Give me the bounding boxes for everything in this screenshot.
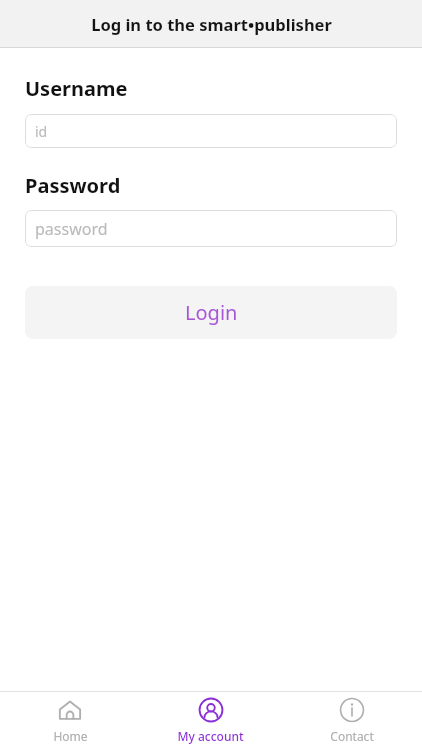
button[interactable]: Contact (281, 691, 422, 750)
staticText: Username (25, 75, 128, 102)
staticText: id (35, 122, 48, 141)
button[interactable]: Login (25, 286, 397, 339)
staticText: Contact (330, 728, 374, 744)
button[interactable]: My account (140, 691, 281, 750)
button[interactable]: Home (0, 691, 140, 750)
button[interactable]: password (25, 210, 397, 247)
staticText: Login (185, 299, 238, 326)
staticText: My account (177, 728, 244, 744)
staticText: Log in to the smart•publisher (91, 13, 332, 35)
staticText: password (35, 218, 108, 240)
staticText: Password (25, 172, 121, 199)
staticText: Home (53, 728, 88, 744)
button[interactable]: id (25, 114, 397, 148)
